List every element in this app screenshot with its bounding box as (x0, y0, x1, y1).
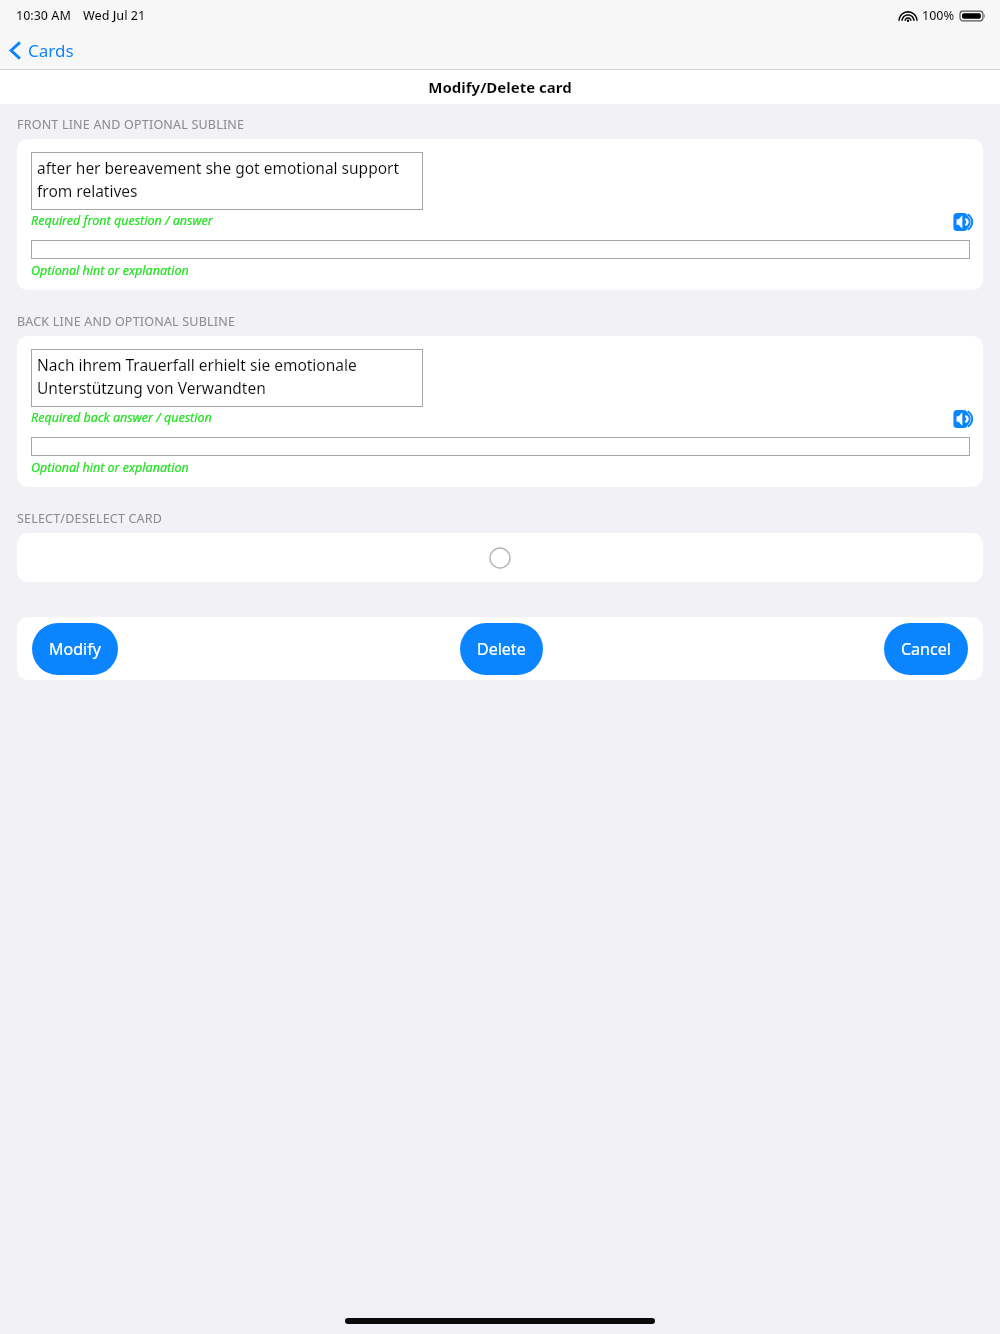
button[interactable]: Speak text (951, 406, 977, 432)
staticText: Optional hint or explanation (31, 459, 189, 476)
staticText: Modify/Delete card (428, 77, 572, 97)
staticText: Unterstützung von Verwandten (37, 377, 266, 398)
staticText: Wed Jul 21 (83, 7, 146, 24)
staticText: BACK LINE AND OPTIONAL SUBLINE (17, 313, 236, 330)
staticText: Required back answer / question (31, 409, 212, 426)
button[interactable] (31, 437, 970, 456)
staticText: SELECT/DESELECT CARD (17, 510, 163, 527)
button[interactable] (31, 240, 970, 259)
staticText: from relatives (37, 180, 138, 201)
staticText: 100% (922, 7, 955, 24)
button[interactable]: after her bereavement she got emotional … (31, 152, 423, 210)
button[interactable]: Delete (460, 623, 543, 675)
staticText: after her bereavement she got emotional … (37, 157, 400, 178)
staticText: Modify (49, 638, 101, 660)
button[interactable]: Modify (32, 623, 118, 675)
button[interactable]: Nach ihrem Trauerfall erhielt sie emotio… (31, 349, 423, 407)
staticText: FRONT LINE AND OPTIONAL SUBLINE (17, 116, 245, 133)
button[interactable]: Cards (0, 34, 88, 67)
staticText: Cards (28, 39, 74, 62)
button[interactable]: Speak text (951, 209, 977, 235)
staticText: Cancel (901, 638, 951, 660)
button[interactable]: Cancel (884, 623, 968, 675)
staticText: Delete (477, 638, 526, 660)
staticText: Nach ihrem Trauerfall erhielt sie emotio… (37, 354, 357, 375)
staticText: 10:30 AM (16, 7, 71, 24)
staticText: Required front question / answer (31, 212, 213, 229)
staticText: Optional hint or explanation (31, 262, 189, 279)
